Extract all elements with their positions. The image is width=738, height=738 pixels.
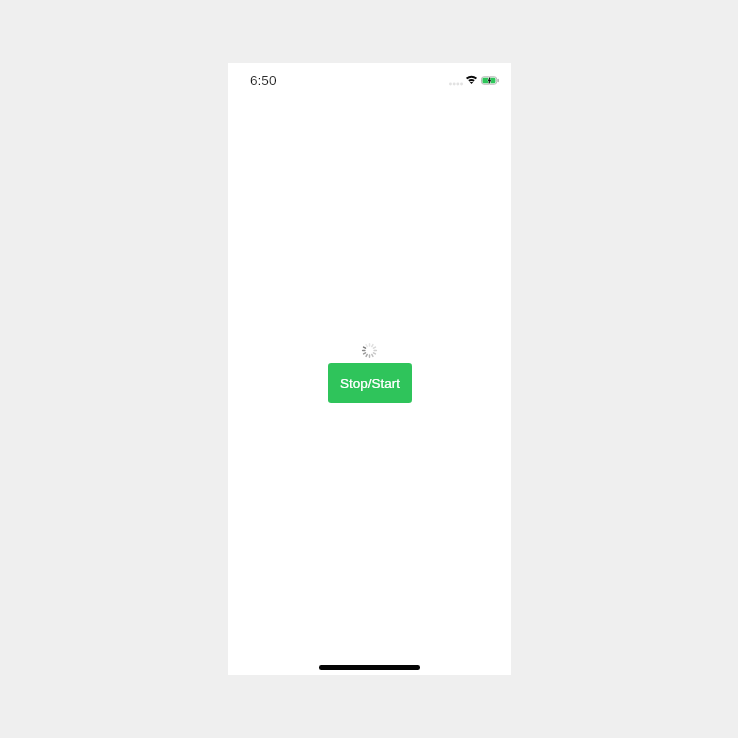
button[interactable]: Stop/Start bbox=[328, 363, 412, 403]
staticText: 6:50 bbox=[250, 73, 277, 88]
other: Wi-Fi connected bbox=[466, 76, 477, 84]
other: Battery charging bbox=[481, 76, 499, 85]
other: Loading bbox=[362, 343, 377, 358]
staticText: Stop/Start bbox=[340, 376, 401, 391]
other: Cellular signal bbox=[449, 82, 463, 86]
